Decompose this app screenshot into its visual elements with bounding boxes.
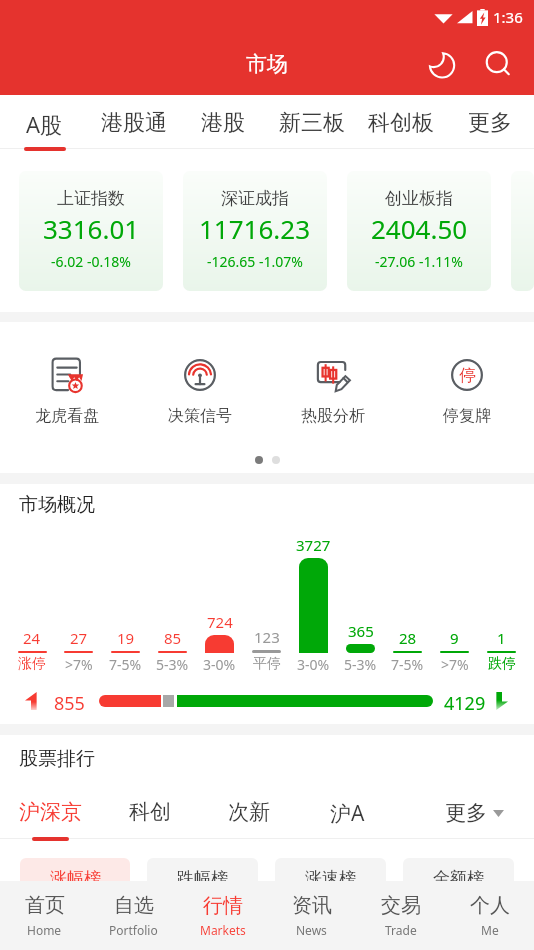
staticText: 1 <box>497 628 506 648</box>
staticText: 市场概况 <box>19 493 95 517</box>
button[interactable]: 创业板指 <box>347 171 491 291</box>
button[interactable]: 龙虎看盘 <box>0 356 133 426</box>
staticText: 855 <box>54 691 85 711</box>
staticText: 跌幅榜 <box>177 868 228 889</box>
button[interactable]: A股 <box>0 95 89 149</box>
staticText: 3-0% <box>203 655 236 674</box>
staticText: Home <box>27 922 62 938</box>
staticText: 金额榜 <box>433 868 484 889</box>
staticText: 资讯 <box>292 893 332 918</box>
staticText: 个人 <box>470 893 510 918</box>
button[interactable]: Search <box>474 40 522 88</box>
staticText: 28 <box>399 628 417 648</box>
staticText: Me <box>481 922 499 938</box>
staticText: 创业板指 <box>385 188 453 209</box>
staticText: Markets <box>200 922 246 938</box>
staticText: Trade <box>385 922 417 938</box>
button[interactable]: 深证成指 <box>183 171 327 291</box>
staticText: 4129 <box>444 691 486 711</box>
staticText: 股票排行 <box>19 747 95 771</box>
button[interactable]: 科创板 <box>356 95 445 149</box>
button[interactable]: 新三板 <box>267 95 356 149</box>
button[interactable]: 更多 <box>445 800 504 826</box>
staticText: Portfolio <box>109 922 158 938</box>
staticText: 19 <box>117 628 135 648</box>
staticText: 涨停 <box>18 655 46 673</box>
staticText: 科创板 <box>368 109 434 137</box>
staticText: 27 <box>70 628 88 648</box>
staticText: 1:36 <box>493 7 523 27</box>
staticText: 724 <box>207 612 233 632</box>
staticText: 平停 <box>253 655 281 673</box>
staticText: 5-3% <box>344 655 377 674</box>
button[interactable]: 更多 <box>445 95 534 149</box>
staticText: 港股通 <box>101 109 167 137</box>
button[interactable]: 港股 <box>178 95 267 149</box>
staticText: 3727 <box>296 535 331 555</box>
button[interactable]: 金额榜 <box>403 858 514 898</box>
button[interactable]: 沪A <box>298 791 397 835</box>
staticText: 上证指数 <box>57 188 125 209</box>
button[interactable]: 首页 <box>0 881 89 950</box>
staticText: 11716.23 <box>199 211 311 246</box>
button[interactable]: 沪深京 <box>0 791 100 835</box>
staticText: 行情 <box>203 893 243 918</box>
staticText: 首页 <box>25 893 65 918</box>
staticText: 新三板 <box>279 109 345 137</box>
staticText: 龙虎看盘 <box>35 406 99 426</box>
staticText: 24 <box>23 628 41 648</box>
button[interactable]: 港股通 <box>89 95 178 149</box>
button[interactable]: 科创 <box>100 791 199 835</box>
staticText: 沪深京 <box>19 799 82 825</box>
staticText: 涨幅榜 <box>50 868 101 889</box>
button[interactable]: 停 <box>400 356 534 426</box>
staticText: 2404.50 <box>371 211 468 246</box>
staticText: 更多 <box>468 109 512 137</box>
staticText: 365 <box>348 621 374 641</box>
staticText: 市场 <box>246 51 288 77</box>
staticText: 3316.01 <box>43 211 140 246</box>
button[interactable]: 行情 <box>178 881 267 950</box>
button[interactable]: 热股分析 <box>266 356 400 426</box>
staticText: 停复牌 <box>443 406 491 426</box>
staticText: 9 <box>450 628 459 648</box>
button[interactable]: 跌幅榜 <box>147 858 258 898</box>
button[interactable]: 涨速榜 <box>275 858 386 898</box>
staticText: 决策信号 <box>168 406 232 426</box>
staticText: 涨速榜 <box>305 868 356 889</box>
staticText: 85 <box>164 628 182 648</box>
staticText: 3-0% <box>297 655 330 674</box>
button[interactable]: 资讯 <box>267 881 356 950</box>
staticText: -27.06 -1.11% <box>375 252 463 271</box>
staticText: >7% <box>65 655 93 674</box>
button[interactable]: 个人 <box>445 881 534 950</box>
staticText: 科创 <box>129 799 171 825</box>
staticText: A股 <box>26 109 63 139</box>
staticText: 沪A <box>330 799 365 828</box>
button[interactable]: 涨幅榜 <box>20 858 130 898</box>
button[interactable]: 上证指数 <box>19 171 163 291</box>
staticText: 次新 <box>228 799 270 825</box>
staticText: 自选 <box>114 893 154 918</box>
staticText: 123 <box>254 627 280 647</box>
staticText: 热股分析 <box>301 406 365 426</box>
button[interactable]: Night mode <box>417 40 465 88</box>
staticText: 5-3% <box>156 655 189 674</box>
staticText: News <box>296 922 327 938</box>
staticText: >7% <box>441 655 469 674</box>
button[interactable]: 交易 <box>356 881 445 950</box>
staticText: 深证成指 <box>221 188 289 209</box>
staticText: 7-5% <box>391 655 424 674</box>
staticText: 7-5% <box>109 655 142 674</box>
staticText: -126.65 -1.07% <box>207 252 303 271</box>
button[interactable]: 次新 <box>199 791 298 835</box>
button[interactable]: 自选 <box>89 881 178 950</box>
staticText: 跌停 <box>488 655 516 673</box>
button[interactable] <box>511 171 534 291</box>
staticText: 更多 <box>445 800 487 826</box>
button[interactable]: 决策信号 <box>133 356 266 426</box>
staticText: 停 <box>459 365 476 386</box>
staticText: 交易 <box>381 893 421 918</box>
staticText: 港股 <box>201 109 245 137</box>
staticText: -6.02 -0.18% <box>51 252 131 271</box>
